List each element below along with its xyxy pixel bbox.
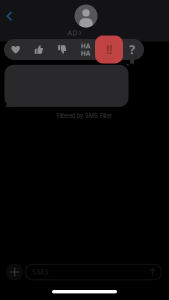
- button[interactable]: Dislike: [52, 39, 72, 59]
- button[interactable]: Back: [0, 2, 26, 32]
- button[interactable]: Exclamation: [95, 35, 123, 63]
- button[interactable]: Haha: [76, 39, 96, 59]
- button[interactable]: Question mark: [122, 39, 142, 59]
- staticText: AD: [67, 29, 77, 37]
- staticText: HA: [81, 49, 91, 58]
- staticText: ?: [129, 41, 135, 57]
- button[interactable]: Love: [6, 39, 26, 59]
- button[interactable]: Like: [29, 39, 49, 59]
- staticText: Filtered by SMS Filter: [57, 113, 112, 119]
- staticText: HA: [81, 41, 91, 50]
- button[interactable]: Add attachment: [6, 263, 23, 280]
- button[interactable]: SMS: [25, 264, 161, 280]
- staticText: SMS: [32, 268, 49, 276]
- staticText: !!: [106, 41, 112, 57]
